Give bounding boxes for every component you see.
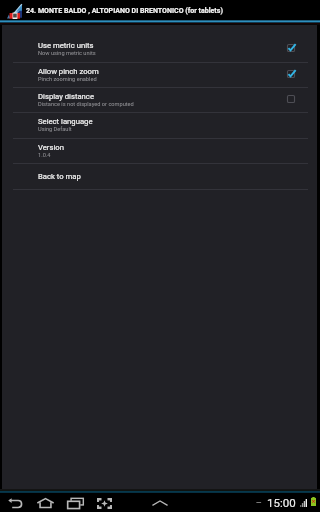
- staticText: Display distance: [38, 92, 94, 101]
- staticText: Version: [38, 143, 64, 152]
- staticText: Using Default: [38, 126, 72, 133]
- button[interactable]: Use metric units: [2, 36, 317, 62]
- button[interactable]: Version: [2, 138, 317, 163]
- staticText: Now using metric units: [38, 50, 96, 57]
- staticText: Allow pinch zoom: [38, 67, 99, 76]
- button[interactable]: Show notifications: [152, 494, 168, 512]
- staticText: Back to map: [38, 172, 81, 181]
- button[interactable]: Allow pinch zoom: [2, 62, 317, 87]
- button[interactable]: Home: [30, 494, 60, 512]
- button[interactable]: [287, 44, 295, 52]
- staticText: Distance is not displayed or computed: [38, 101, 134, 108]
- button[interactable]: Recent apps: [60, 494, 90, 512]
- button[interactable]: Back: [0, 494, 30, 512]
- button[interactable]: Select language: [2, 112, 317, 138]
- staticText: Use metric units: [38, 41, 94, 50]
- button[interactable]: [287, 95, 295, 103]
- staticText: —: [256, 499, 262, 507]
- button[interactable]: [287, 70, 295, 78]
- staticText: 15:00: [267, 496, 296, 509]
- button[interactable]: Back to map: [2, 163, 317, 189]
- staticText: 1.0.4: [38, 152, 51, 159]
- button[interactable]: Screenshot: [89, 494, 119, 512]
- button[interactable]: Display distance: [2, 87, 317, 112]
- staticText: Select language: [38, 117, 93, 126]
- staticText: 24. MONTE BALDO , ALTOPIANO DI BRENTONIC…: [26, 6, 223, 14]
- staticText: Pinch zooming enabled: [38, 76, 97, 83]
